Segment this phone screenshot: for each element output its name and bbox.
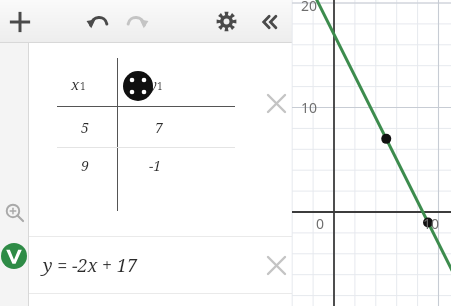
button[interactable]: Delete table (261, 88, 291, 118)
button[interactable]: Collapse panel (246, 0, 290, 43)
staticText: 1 (80, 79, 86, 93)
button[interactable]: Delete expression (261, 250, 291, 280)
button[interactable]: Add item (0, 0, 40, 43)
button[interactable]: Point style (123, 71, 153, 101)
staticText: x (71, 74, 80, 94)
button[interactable]: Settings (206, 0, 246, 43)
staticText: 5 (81, 118, 89, 137)
staticText: y = −2x + 17 (43, 253, 137, 278)
button[interactable]: Redo (117, 0, 157, 43)
staticText: y (149, 74, 157, 94)
button[interactable]: Expression color (1, 243, 27, 269)
staticText: 9 (81, 156, 89, 175)
staticText: 1 (157, 79, 163, 93)
staticText: 0 (316, 214, 325, 233)
staticText: 10 (301, 98, 318, 117)
button[interactable]: Zoom in (0, 196, 28, 228)
staticText: 10 (423, 214, 440, 233)
button[interactable]: y = −2x + 17 (29, 237, 292, 293)
button[interactable]: Undo (78, 0, 118, 43)
staticText: −1 (149, 156, 162, 175)
staticText: 20 (301, 0, 318, 15)
staticText: 7 (155, 118, 163, 137)
